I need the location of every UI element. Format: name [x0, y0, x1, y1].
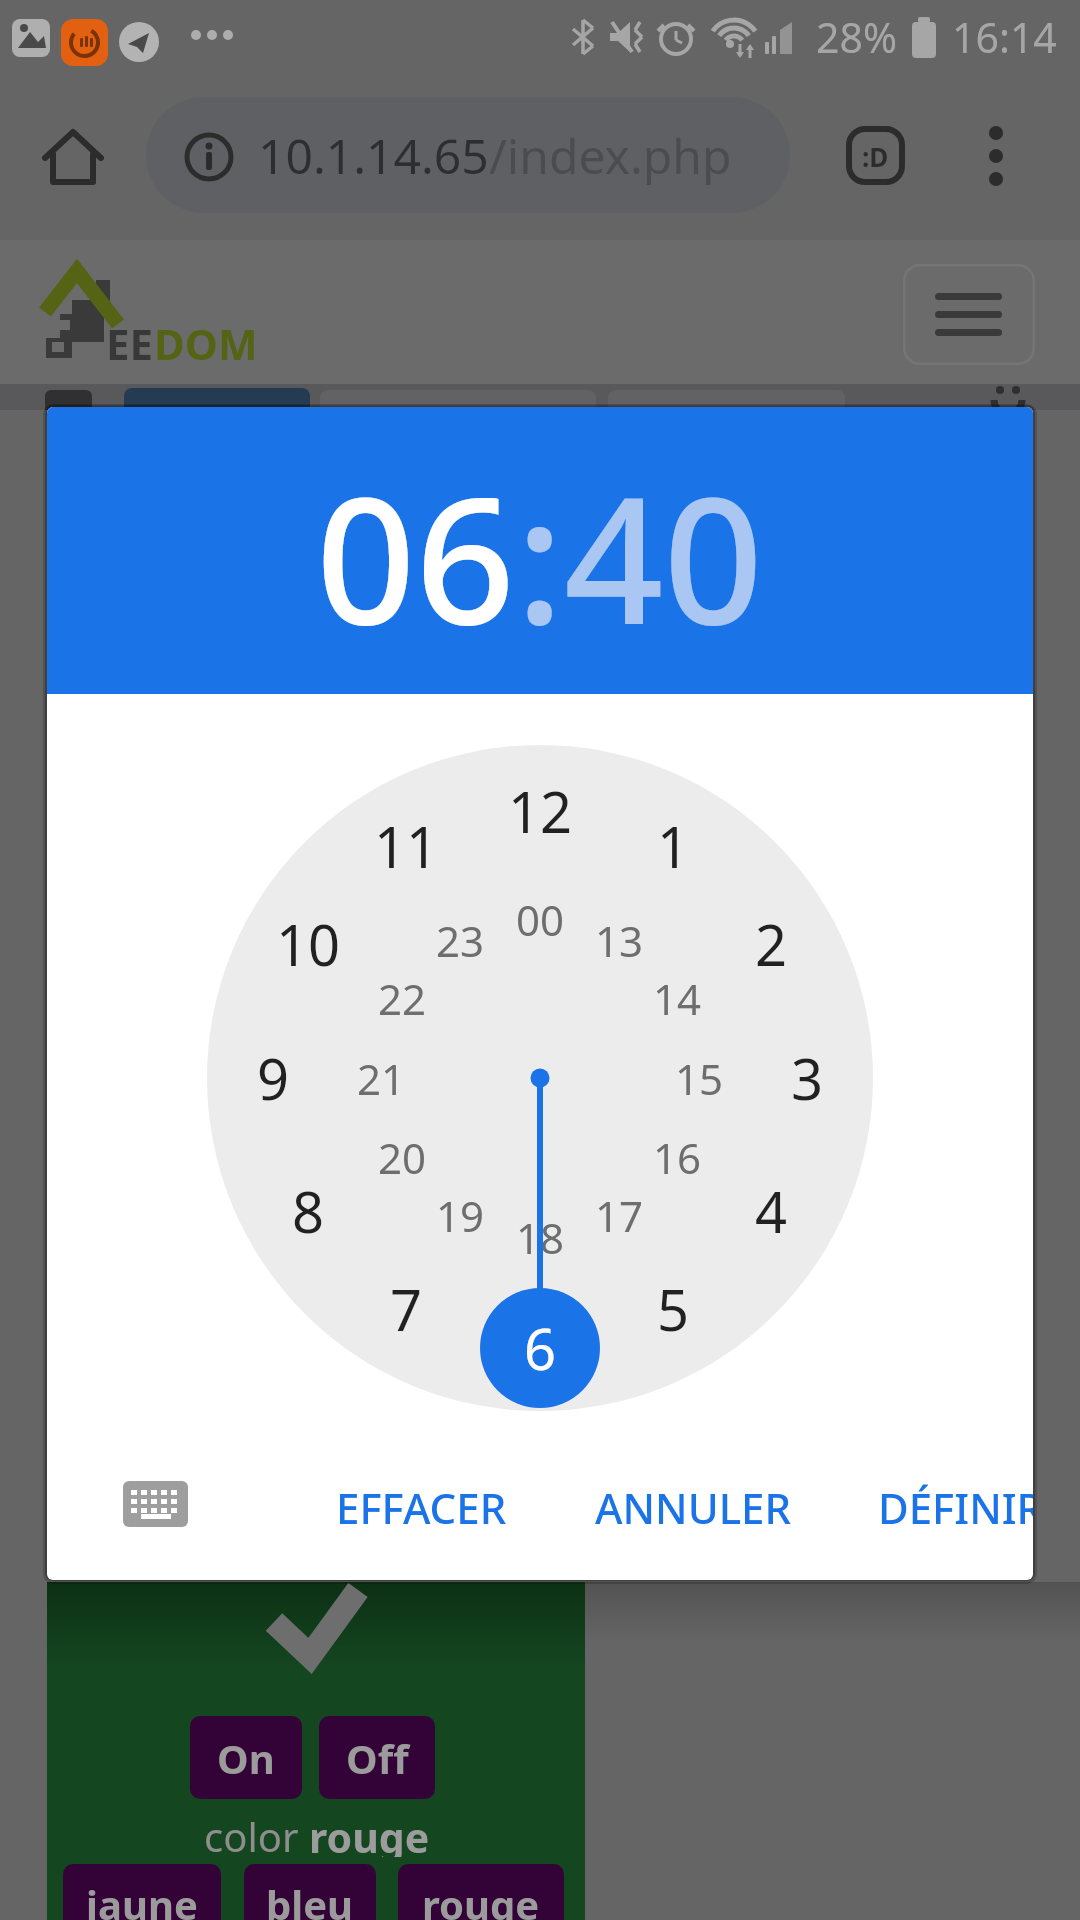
- staticText: 2: [755, 906, 788, 982]
- staticText: jaune: [86, 1877, 198, 1920]
- button[interactable]: On: [190, 1716, 302, 1799]
- staticText: EFFACER: [336, 1479, 507, 1531]
- staticText: 6: [524, 1307, 557, 1383]
- button[interactable]: [976, 125, 1016, 189]
- staticText: DOM: [154, 315, 258, 372]
- staticText: 9: [257, 1040, 290, 1116]
- staticText: 7: [390, 1271, 423, 1347]
- button[interactable]: EFFACER: [336, 1479, 536, 1531]
- staticText: :D: [862, 139, 889, 174]
- button[interactable]: [45, 128, 101, 186]
- staticText: 28%: [816, 9, 897, 65]
- staticText: Off: [346, 1731, 409, 1785]
- staticText: :: [516, 438, 564, 675]
- staticText: rouge: [422, 1877, 540, 1920]
- button[interactable]: jaune: [63, 1864, 221, 1920]
- button[interactable]: Off: [319, 1716, 435, 1799]
- button[interactable]: :D: [845, 127, 905, 185]
- staticText: 19: [436, 1187, 485, 1244]
- staticText: DÉFINIR: [878, 1479, 1033, 1531]
- staticText: On: [217, 1731, 275, 1785]
- button[interactable]: rouge: [398, 1864, 564, 1920]
- staticText: 4: [755, 1173, 788, 1249]
- staticText: 11: [374, 808, 439, 884]
- staticText: 16: [653, 1129, 702, 1186]
- staticText: 15: [675, 1050, 724, 1107]
- button[interactable]: DÉFINIR: [878, 1479, 1033, 1531]
- staticText: 12: [508, 773, 573, 849]
- staticText: 5: [657, 1271, 690, 1347]
- staticText: 10.1.14.65: [258, 123, 489, 188]
- staticText: 23: [436, 912, 485, 969]
- button[interactable]: ANNULER: [595, 1479, 805, 1531]
- staticText: 6: [524, 1310, 557, 1386]
- staticText: 18: [516, 1209, 565, 1266]
- staticText: EE: [106, 315, 154, 372]
- staticText: 13: [595, 912, 644, 969]
- staticText: 06: [316, 438, 516, 675]
- staticText: /index.php: [489, 123, 732, 188]
- button[interactable]: [123, 1481, 188, 1527]
- staticText: 21: [357, 1050, 406, 1107]
- staticText: 10: [276, 906, 341, 982]
- staticText: 3: [791, 1040, 824, 1116]
- button[interactable]: 10.1.14.65: [146, 97, 790, 213]
- button[interactable]: bleu: [244, 1864, 376, 1920]
- staticText: bleu: [266, 1877, 354, 1920]
- staticText: 00: [516, 891, 565, 948]
- staticText: 40: [564, 438, 764, 675]
- staticText: 8: [292, 1173, 325, 1249]
- staticText: rouge: [309, 1809, 430, 1857]
- button[interactable]: [903, 264, 1035, 365]
- staticText: 20: [378, 1129, 427, 1186]
- staticText: 22: [378, 970, 427, 1027]
- staticText: 17: [595, 1187, 644, 1244]
- staticText: ANNULER: [595, 1479, 792, 1531]
- staticText: 1: [657, 808, 690, 884]
- staticText: 14: [653, 970, 702, 1027]
- staticText: color: [204, 1809, 309, 1857]
- staticText: 16:14: [952, 9, 1057, 65]
